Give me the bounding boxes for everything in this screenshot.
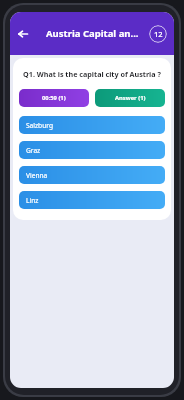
staticText: Linz xyxy=(26,196,39,205)
button[interactable]: Graz xyxy=(19,141,165,159)
button[interactable]: Answer (1) xyxy=(95,89,165,107)
button[interactable]: Score 12 xyxy=(149,25,167,43)
staticText: 12 xyxy=(154,29,163,39)
staticText: Answer (1) xyxy=(115,94,146,102)
button[interactable]: Linz xyxy=(19,191,165,209)
button[interactable]: Salzburg xyxy=(19,116,165,134)
staticText: 00:59 (1) xyxy=(42,94,66,102)
staticText: Graz xyxy=(26,146,41,155)
staticText: Vienna xyxy=(26,171,48,180)
button[interactable]: 00:59 (1) xyxy=(19,89,89,107)
staticText: Salzburg xyxy=(26,121,53,130)
staticText: Austria Capital an... xyxy=(46,27,139,40)
button[interactable]: Vienna xyxy=(19,166,165,184)
button[interactable]: Back xyxy=(12,23,34,45)
staticText: Q1. What is the capital city of Austria … xyxy=(23,69,161,79)
